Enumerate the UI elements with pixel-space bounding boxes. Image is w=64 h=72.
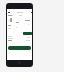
button[interactable]: Navigation bar bbox=[6, 60, 33, 67]
button[interactable] bbox=[8, 46, 31, 50]
button[interactable]: Back bbox=[7, 11, 10, 14]
button[interactable] bbox=[23, 32, 32, 35]
button[interactable]: More options bbox=[30, 11, 33, 14]
